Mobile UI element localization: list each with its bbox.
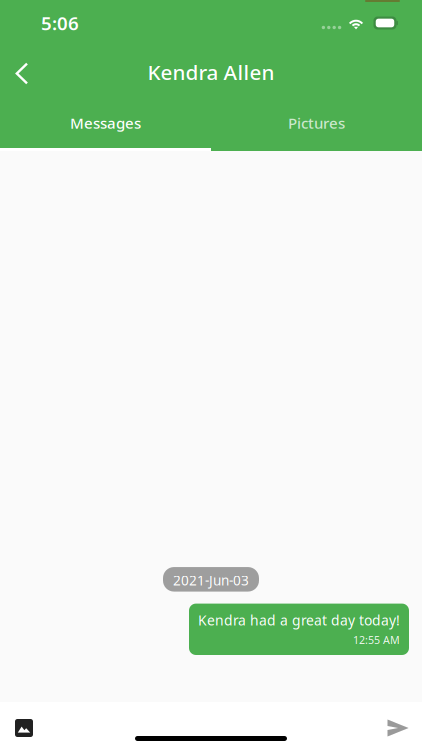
button[interactable]: Back [0,48,43,92]
staticText: 12:55 AM [353,632,400,647]
button[interactable]: Pictures [211,96,422,151]
staticText: Kendra had a great day today! [198,611,400,629]
button[interactable]: Messages [0,96,211,151]
button[interactable]: Send [375,718,422,738]
staticText: 2021-Jun-03 [173,571,249,590]
staticText: Kendra Allen [147,58,274,86]
staticText: 5:06 [41,10,79,36]
staticText: Pictures [288,113,345,133]
button[interactable]: Attach photo [0,718,45,738]
staticText: Messages [70,113,141,133]
